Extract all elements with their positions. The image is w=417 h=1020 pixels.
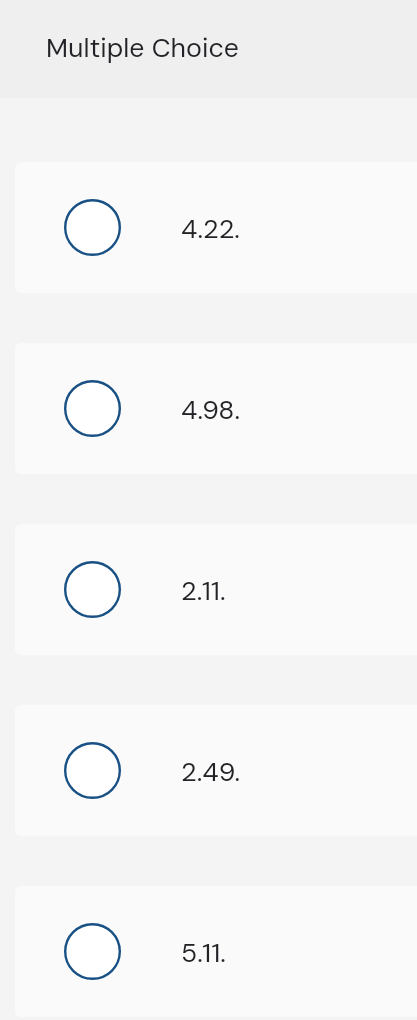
button[interactable]: Select answer 4.22.	[15, 162, 417, 293]
other: Select answer 2.11.	[64, 561, 121, 618]
staticText: Multiple Choice	[46, 31, 239, 66]
other: Select answer 4.22.	[64, 199, 121, 256]
other: Select answer 4.98.	[64, 380, 121, 437]
staticText: 2.49.	[181, 755, 241, 790]
other: Select answer 2.49.	[64, 742, 121, 799]
button[interactable]: Select answer 5.11.	[15, 886, 417, 1017]
staticText: 4.22.	[181, 212, 240, 247]
button[interactable]: Select answer 2.11.	[15, 524, 417, 655]
other: Select answer 5.11.	[64, 923, 121, 980]
staticText: 4.98.	[181, 393, 241, 428]
button[interactable]: Select answer 4.98.	[15, 343, 417, 474]
staticText: 2.11.	[181, 574, 226, 609]
button[interactable]: Select answer 2.49.	[15, 705, 417, 836]
staticText: 5.11.	[181, 936, 226, 971]
